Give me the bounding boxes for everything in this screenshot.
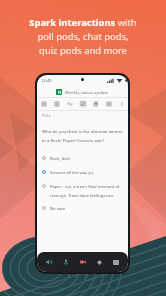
staticText: Rock, duh! (50, 156, 71, 162)
button[interactable]: Speaker (42, 255, 56, 269)
button[interactable]: Bookmark (92, 100, 100, 108)
button[interactable]: More (118, 100, 126, 108)
button[interactable]: Microphone (59, 255, 73, 269)
button[interactable]: No vote (42, 202, 123, 216)
button[interactable]: Scissors all the way yo. (42, 166, 123, 180)
staticText: Paper - cut, a tree's final moment of re… (50, 184, 120, 198)
button[interactable]: Image (79, 100, 87, 108)
button[interactable]: Table (53, 100, 61, 108)
staticText: 12:43 (41, 78, 52, 84)
button[interactable]: Insert (40, 100, 48, 108)
staticText: Scissors all the way yo. (50, 170, 95, 176)
staticText: Spark interactions with poll pods, chat … (6, 16, 160, 56)
staticText: Weekly status update (65, 89, 109, 95)
button[interactable]: Rock, duh! (42, 152, 123, 166)
staticText: No vote (50, 206, 66, 212)
button[interactable]: Raise hand (92, 255, 106, 269)
staticText: Who do you think is the ultimate winner … (42, 128, 123, 144)
button[interactable]: Code (105, 100, 113, 108)
staticText: POLL (42, 114, 51, 118)
button[interactable]: More options (109, 255, 123, 269)
button[interactable]: Link (66, 100, 74, 108)
button[interactable]: Paper - cut, a tree's final moment of re… (42, 180, 123, 202)
button[interactable]: Turn off camera (76, 255, 90, 269)
